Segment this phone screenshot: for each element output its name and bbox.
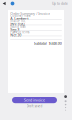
- staticText: Send invoice: [24, 98, 45, 102]
- staticText: Draft saved: [26, 104, 42, 108]
- staticText: INV-1042: [10, 22, 25, 27]
- staticText: Issued date: [10, 25, 26, 28]
- button[interactable]: Up to date: [51, 0, 69, 7]
- staticText: Order Summary / Invoice: [10, 11, 50, 16]
- staticText: Up to date: [52, 1, 68, 6]
- button[interactable]: Send invoice: [12, 97, 57, 103]
- staticText: Invoice no.: [10, 19, 26, 23]
- button[interactable]: Back: [1, 0, 7, 7]
- staticText: Customer name: [10, 14, 31, 17]
- button[interactable]: Account: [9, 0, 16, 7]
- staticText: Payment terms: [10, 30, 29, 34]
- staticText: Subtotal $348.00: [34, 41, 62, 46]
- staticText: Net 30: [10, 33, 21, 38]
- staticText: A. Lambert: [10, 16, 28, 21]
- staticText: Sep 3: [10, 27, 19, 32]
